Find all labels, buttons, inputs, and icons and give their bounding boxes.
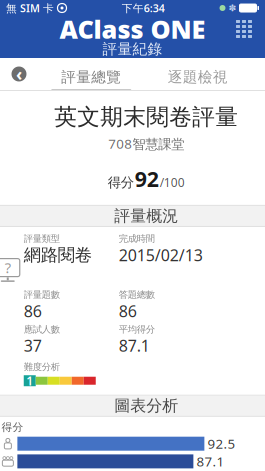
staticText: 92: [135, 164, 159, 193]
staticText: 86: [119, 300, 137, 321]
staticText: 評量類型: [24, 233, 60, 244]
staticText: 應試人數: [24, 323, 60, 335]
button[interactable]: 功能選單: [231, 16, 257, 42]
staticText: 平均得分: [119, 323, 155, 335]
staticText: 網路閱卷: [24, 244, 92, 266]
staticText: 逐題檢視: [168, 68, 228, 86]
button[interactable]: 返回: [0, 59, 38, 89]
staticText: 87.1: [196, 452, 224, 470]
staticText: AClass ONE: [59, 12, 205, 46]
staticText: 1: [26, 373, 33, 389]
staticText: 87.1: [119, 335, 150, 356]
staticText: 難度分析: [24, 361, 60, 373]
staticText: 評量總覽: [61, 68, 121, 86]
button[interactable]: 評量總覽: [38, 58, 144, 90]
staticText: ‹: [16, 62, 22, 85]
staticText: 708智慧課堂: [108, 135, 184, 152]
staticText: 下午6:34: [122, 1, 165, 15]
staticText: 英文期末閱卷評量: [54, 103, 238, 131]
staticText: /100: [160, 174, 185, 190]
staticText: 評量題數: [24, 289, 60, 300]
staticText: 圖表分析: [114, 396, 178, 416]
staticText: 得分: [108, 174, 134, 191]
staticText: 86: [24, 300, 42, 321]
staticText: 答題總數: [119, 289, 155, 300]
staticText: 37: [24, 335, 42, 356]
staticText: ?: [5, 258, 11, 277]
staticText: ✽: [228, 3, 236, 13]
staticText: 92.5: [207, 435, 235, 452]
staticText: 2015/02/13: [119, 244, 203, 265]
staticText: 評量紀錄: [102, 40, 162, 58]
button[interactable]: 逐題檢視: [144, 58, 251, 90]
staticText: 得分: [1, 421, 23, 434]
staticText: 無 SIM 卡: [6, 1, 54, 15]
staticText: 完成時間: [119, 233, 155, 244]
staticText: 評量概況: [114, 206, 178, 226]
